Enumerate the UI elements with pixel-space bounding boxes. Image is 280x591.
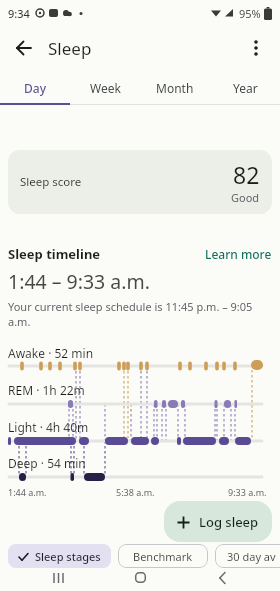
button[interactable] (238, 30, 274, 66)
staticText: Sleep score (20, 174, 82, 190)
staticText: Day (24, 80, 46, 96)
button[interactable]: Benchmark (118, 544, 208, 568)
staticText: Learn more (205, 246, 272, 262)
button[interactable] (112, 564, 168, 591)
staticText: Good (231, 190, 260, 205)
button[interactable]: Learn more (205, 246, 272, 262)
staticText: Awake · 52 min (8, 345, 94, 361)
staticText: 5:38 a.m. (116, 486, 155, 498)
button[interactable]: Week (70, 70, 140, 105)
staticText: 9:33 a.m. (228, 486, 267, 498)
staticText: 1:44 – 9:33 a.m. (8, 268, 150, 295)
button[interactable] (30, 564, 86, 591)
staticText: Sleep timeline (8, 245, 101, 263)
staticText: 30 day average (227, 549, 276, 564)
staticText: Week (90, 80, 121, 96)
staticText: 1:44 a.m. (8, 486, 47, 498)
staticText: 9:34 (8, 6, 30, 21)
button[interactable]: Month (140, 70, 210, 105)
staticText: Sleep stages (35, 549, 101, 564)
staticText: REM · 1h 22m (8, 382, 85, 398)
staticText: Sleep (48, 37, 92, 60)
button[interactable]: Sleep stages (8, 544, 111, 568)
staticText: 82 (233, 159, 260, 190)
button[interactable]: Day (0, 70, 70, 105)
button[interactable]: Sleep score (8, 150, 272, 214)
staticText: 95% (239, 6, 261, 21)
staticText: Log sleep (199, 513, 259, 531)
staticText: Year (233, 80, 258, 96)
button[interactable] (194, 564, 250, 591)
button[interactable]: 30 day average (215, 544, 280, 568)
staticText: Benchmark (133, 549, 193, 564)
staticText: Deep · 54 min (8, 455, 86, 471)
staticText: Month (156, 80, 194, 96)
button[interactable] (6, 30, 42, 66)
staticText: Light · 4h 40m (8, 419, 89, 435)
button[interactable]: Year (210, 70, 280, 105)
button[interactable]: Log sleep (164, 501, 272, 542)
staticText: Your current sleep schedule is 11:45 p.m… (8, 299, 253, 329)
